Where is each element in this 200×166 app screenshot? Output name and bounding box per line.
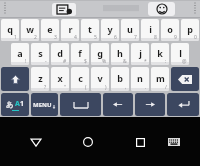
staticText: s — [38, 47, 43, 59]
button[interactable]: u — [121, 19, 139, 41]
staticText: f — [78, 47, 82, 59]
button[interactable]: c — [71, 67, 89, 91]
staticText: a — [17, 47, 23, 59]
staticText: 8 — [154, 34, 157, 41]
staticText: b — [117, 72, 123, 84]
button[interactable]: Cursor left — [103, 93, 133, 116]
staticText: 7 — [134, 34, 137, 41]
staticText: ! — [25, 58, 27, 65]
staticText: 3 — [54, 34, 57, 41]
staticText: " — [64, 84, 67, 91]
staticText: 1 — [20, 99, 25, 109]
staticText: d — [57, 47, 63, 59]
staticText: , — [125, 84, 127, 91]
button[interactable]: t — [81, 19, 99, 41]
button[interactable]: g — [91, 43, 109, 65]
button[interactable]: a — [11, 43, 29, 65]
button[interactable]: k — [151, 43, 169, 65]
button[interactable]: f — [71, 43, 89, 65]
button[interactable]: s — [31, 43, 49, 65]
staticText: g — [97, 47, 103, 59]
staticText: $ — [84, 58, 87, 65]
staticText: k — [157, 47, 163, 59]
staticText: o — [167, 23, 173, 35]
button[interactable]: h — [111, 43, 129, 65]
button[interactable]: x — [51, 67, 69, 91]
staticText: % — [102, 58, 107, 65]
button[interactable]: Emoji — [148, 2, 175, 16]
button[interactable]: Space — [60, 93, 101, 116]
staticText: @ — [182, 58, 187, 65]
staticText: z — [38, 72, 43, 84]
button[interactable]: z — [31, 67, 49, 91]
staticText: w — [26, 23, 34, 35]
staticText: MENU — [33, 101, 52, 109]
staticText: y — [107, 23, 113, 35]
staticText: # — [63, 58, 67, 65]
button[interactable]: MENU — [31, 93, 58, 116]
button[interactable]: Back — [23, 129, 49, 155]
staticText: 5 — [94, 34, 97, 41]
button[interactable]: Switch keyboard — [161, 129, 187, 155]
button[interactable]: i — [141, 19, 159, 41]
staticText: i — [149, 23, 152, 35]
button[interactable]: r — [61, 19, 79, 41]
button[interactable]: Backspace — [171, 67, 199, 91]
staticText: q — [7, 23, 13, 35]
staticText: l — [179, 47, 182, 59]
staticText: 4 — [74, 34, 77, 41]
staticText: h — [117, 47, 123, 59]
staticText: j — [139, 47, 142, 59]
button[interactable]: Enter — [167, 93, 199, 116]
button[interactable]: w — [21, 19, 39, 41]
button[interactable]: j — [131, 43, 149, 65]
staticText: : — [165, 58, 167, 65]
button[interactable]: o — [161, 19, 179, 41]
button[interactable]: Text tools — [52, 3, 76, 16]
staticText: x — [57, 72, 63, 84]
staticText: c — [78, 72, 83, 84]
staticText: あ — [6, 100, 14, 109]
button[interactable]: Cursor right — [135, 93, 165, 116]
staticText: m — [156, 72, 165, 84]
staticText: 0 — [194, 34, 197, 41]
button[interactable]: q — [1, 19, 19, 41]
button[interactable]: b — [111, 67, 129, 91]
staticText: & — [123, 58, 127, 65]
staticText: n — [137, 72, 143, 84]
staticText: ( — [85, 84, 87, 91]
staticText: v — [97, 72, 103, 84]
staticText: e — [47, 23, 53, 35]
staticText: - — [45, 58, 47, 65]
button[interactable]: n — [131, 67, 149, 91]
button[interactable]: p — [181, 19, 199, 41]
staticText: r — [68, 23, 73, 35]
staticText: 2 — [34, 34, 37, 41]
staticText: t — [88, 23, 92, 35]
staticText: 9 — [174, 34, 177, 41]
staticText: / — [165, 84, 167, 91]
button[interactable]: y — [101, 19, 119, 41]
button[interactable]: Switch input mode — [1, 93, 29, 116]
button[interactable]: l — [171, 43, 189, 65]
button[interactable]: m — [151, 67, 169, 91]
staticText: ? — [44, 84, 47, 91]
staticText: 6 — [114, 34, 117, 41]
button[interactable]: Home — [75, 129, 101, 155]
staticText: . — [145, 84, 147, 91]
button[interactable]: d — [51, 43, 69, 65]
staticText: * — [144, 58, 147, 65]
button[interactable]: e — [41, 19, 59, 41]
staticText: A — [15, 99, 20, 109]
button[interactable]: Shift — [1, 67, 29, 91]
button[interactable]: Recent apps — [127, 129, 153, 155]
staticText: ) — [105, 84, 107, 91]
staticText: p — [187, 23, 193, 35]
staticText: u — [127, 23, 133, 35]
button[interactable]: v — [91, 67, 109, 91]
staticText: 1 — [14, 34, 17, 41]
